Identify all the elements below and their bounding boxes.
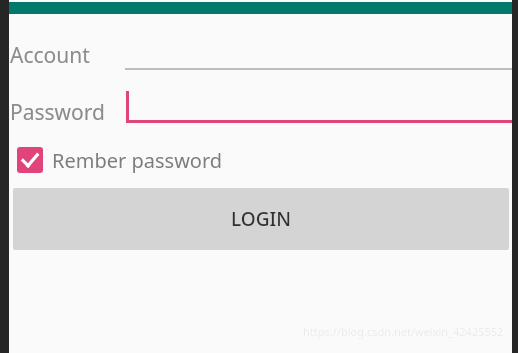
button[interactable]: Password [9, 86, 512, 136]
button[interactable]: LOGIN [13, 188, 509, 250]
staticText: Rember password [52, 147, 223, 174]
staticText: Password [10, 98, 105, 127]
staticText: Account [10, 41, 90, 70]
staticText: LOGIN [231, 206, 291, 232]
button[interactable]: Rember password [9, 143, 206, 177]
staticText: https://blog.csdn.net/weixin_42425552 [303, 324, 504, 339]
button[interactable]: Account [9, 29, 512, 77]
